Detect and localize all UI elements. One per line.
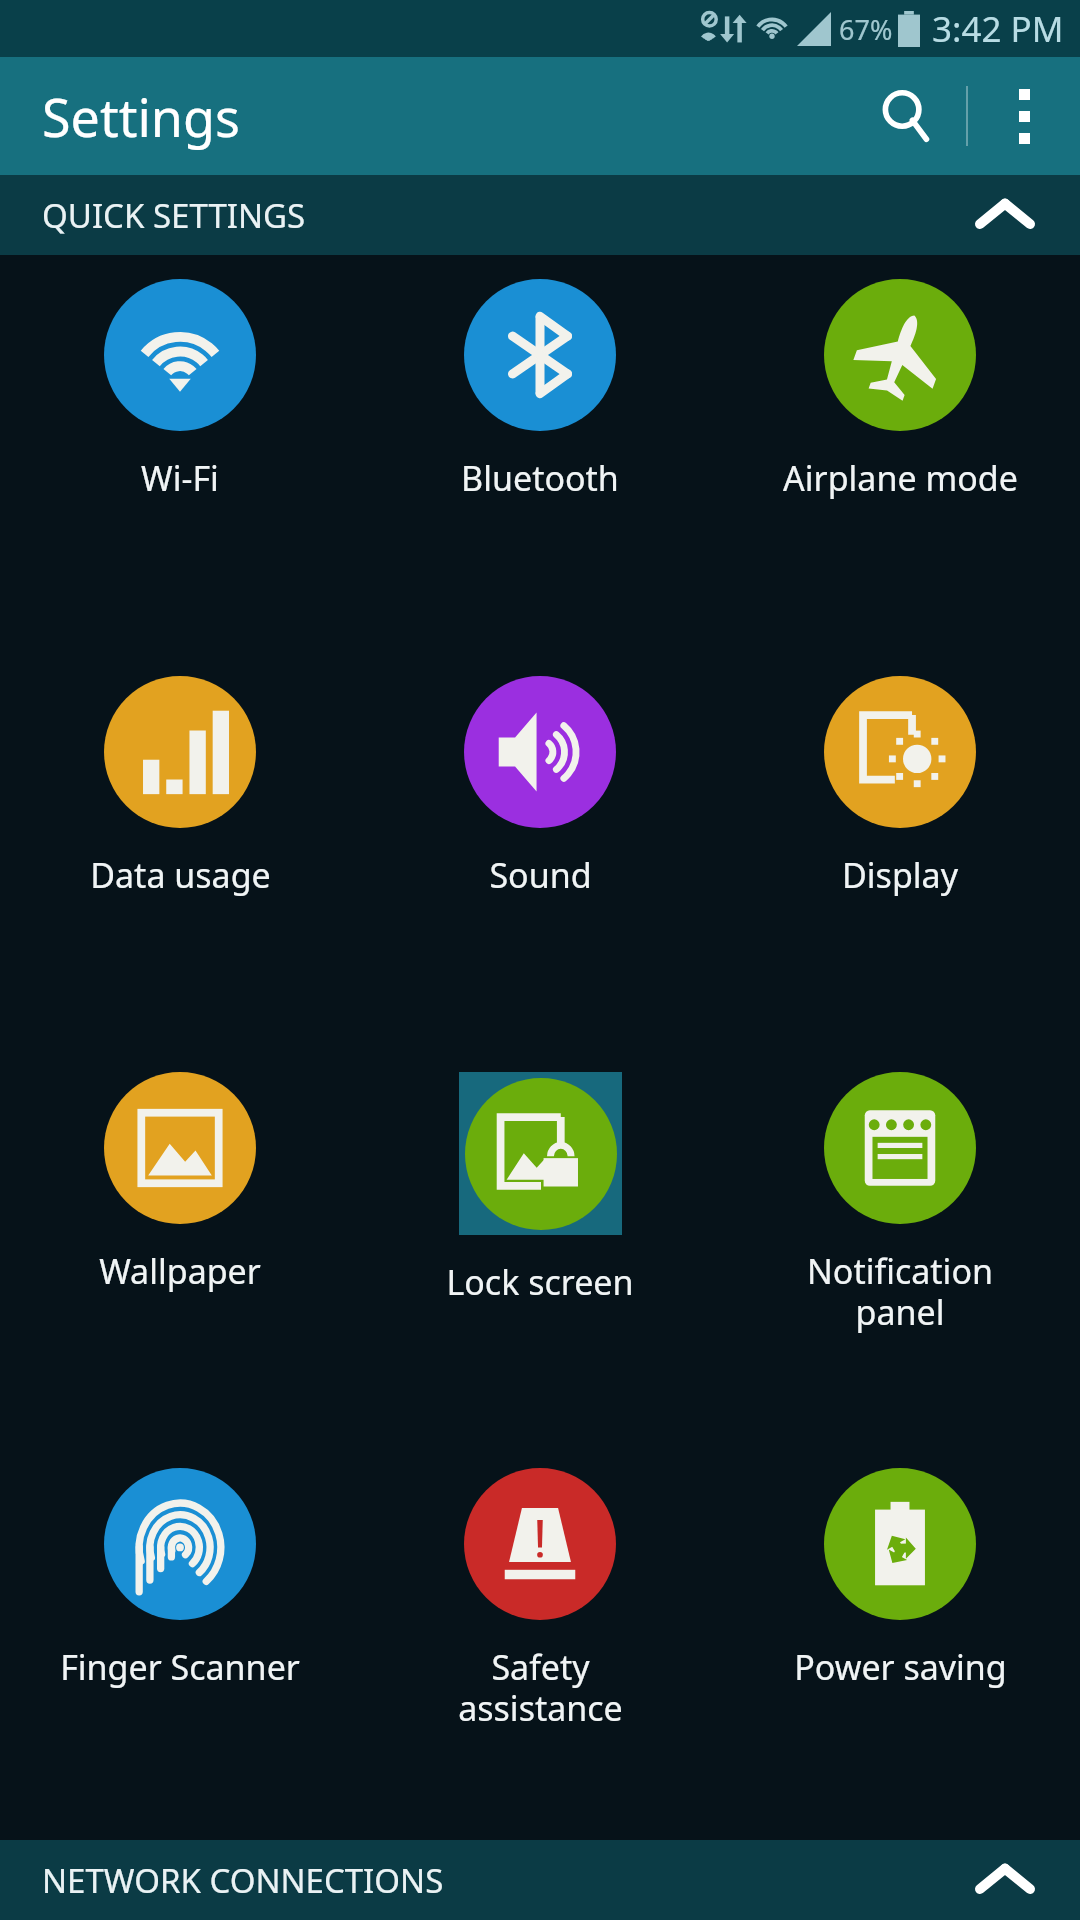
button[interactable]: Data usage: [0, 652, 360, 1048]
staticText: Safety assistance: [458, 1644, 623, 1731]
button[interactable]: Bluetooth: [360, 255, 720, 652]
staticText: Notification panel: [807, 1248, 993, 1335]
staticText: Finger Scanner: [60, 1644, 300, 1690]
staticText: 3:42 PM: [932, 5, 1064, 53]
button[interactable]: More options: [968, 60, 1080, 172]
button[interactable]: Power saving: [720, 1444, 1080, 1840]
staticText: Airplane mode: [783, 455, 1018, 501]
staticText: Display: [842, 852, 958, 898]
staticText: 67%: [839, 11, 893, 48]
button[interactable]: NETWORK CONNECTIONS: [0, 1840, 1080, 1920]
staticText: Lock screen: [446, 1259, 634, 1305]
staticText: Wallpaper: [99, 1248, 261, 1294]
staticText: Settings: [42, 81, 240, 152]
button[interactable]: Display: [720, 652, 1080, 1048]
staticText: QUICK SETTINGS: [42, 193, 306, 238]
staticText: Power saving: [794, 1644, 1007, 1690]
button[interactable]: Wallpaper: [0, 1048, 360, 1444]
button[interactable]: Wi-Fi: [0, 255, 360, 652]
staticText: Bluetooth: [461, 455, 619, 501]
staticText: Wi-Fi: [141, 455, 219, 501]
button[interactable]: Airplane mode: [720, 255, 1080, 652]
staticText: Sound: [489, 852, 592, 898]
button[interactable]: Search: [848, 57, 966, 175]
button[interactable]: Sound: [360, 652, 720, 1048]
staticText: NETWORK CONNECTIONS: [42, 1858, 444, 1903]
button[interactable]: Notification panel: [720, 1048, 1080, 1444]
staticText: Data usage: [90, 852, 271, 898]
button[interactable]: Safety assistance: [360, 1444, 720, 1840]
button[interactable]: Lock screen: [360, 1048, 720, 1444]
button[interactable]: Finger Scanner: [0, 1444, 360, 1840]
button[interactable]: QUICK SETTINGS: [0, 175, 1080, 255]
